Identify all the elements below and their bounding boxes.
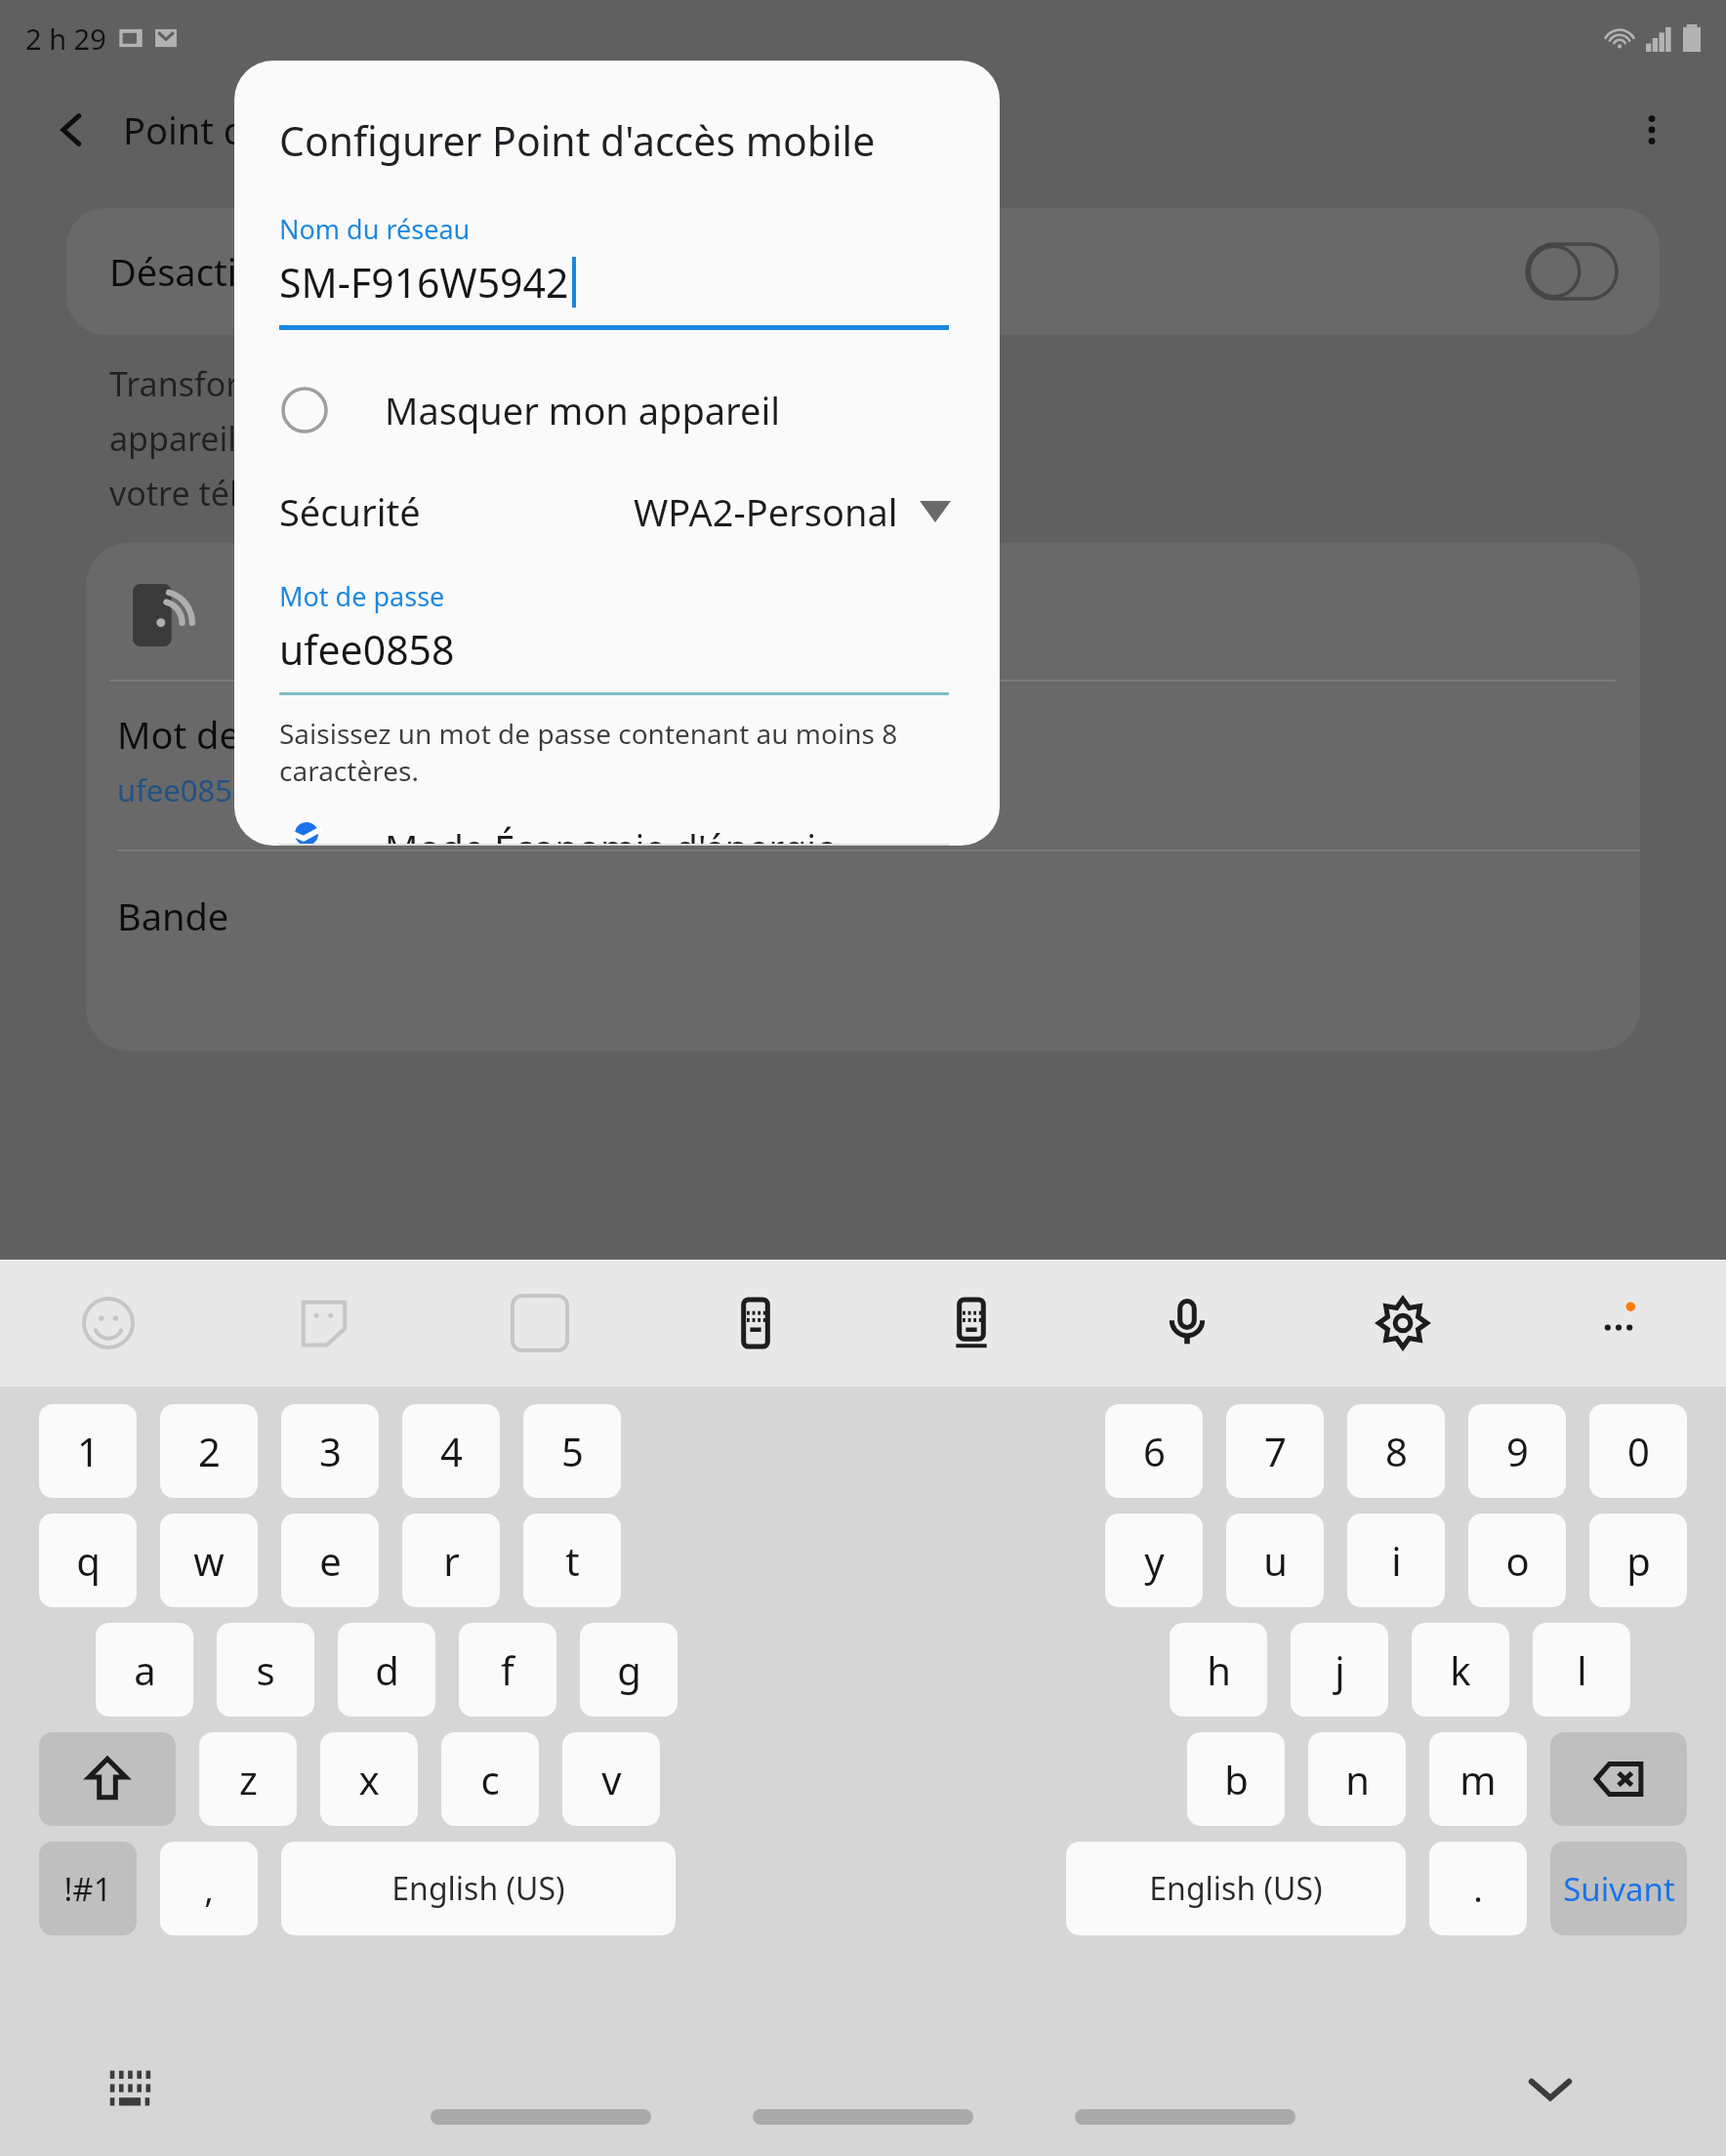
button[interactable]: 1 — [39, 1404, 137, 1498]
staticText: w — [193, 1534, 225, 1587]
staticText: r — [443, 1534, 460, 1587]
button[interactable]: h — [1170, 1623, 1267, 1717]
button[interactable]: 0 — [1589, 1404, 1687, 1498]
button[interactable]: Key — [39, 1732, 176, 1826]
button[interactable]: s — [217, 1623, 314, 1717]
button[interactable]: Back — [45, 103, 100, 157]
button[interactable]: Settings — [1294, 1260, 1510, 1387]
staticText: 0 — [1627, 1425, 1650, 1477]
staticText: !#1 — [63, 1867, 112, 1911]
button[interactable]: w — [160, 1513, 258, 1607]
staticText: m — [1459, 1753, 1497, 1805]
staticText: n — [1345, 1753, 1370, 1805]
button[interactable]: 3 — [281, 1404, 379, 1498]
button[interactable]: z — [199, 1732, 297, 1826]
staticText: y — [1144, 1534, 1165, 1587]
button[interactable]: l — [1533, 1623, 1630, 1717]
button[interactable]: e — [281, 1513, 379, 1607]
button[interactable]: g — [580, 1623, 678, 1717]
button[interactable]: r — [402, 1513, 500, 1607]
button[interactable]: English (US) — [1066, 1842, 1406, 1935]
button[interactable]: 8 — [1347, 1404, 1445, 1498]
button[interactable]: b — [1187, 1732, 1285, 1826]
button[interactable]: Sécurité — [279, 477, 951, 547]
staticText: Nom du réseau — [279, 211, 471, 247]
staticText: 2 h 29 — [25, 20, 106, 58]
button[interactable]: x — [320, 1732, 418, 1826]
staticText: Désactivé — [109, 246, 277, 297]
staticText: x — [358, 1753, 380, 1805]
button[interactable]: Keyboard layout — [107, 2066, 152, 2111]
button[interactable]: Voice input — [1079, 1260, 1294, 1387]
staticText: Configurer Point d'accès mobile — [279, 113, 876, 168]
staticText: Mot de passe — [117, 709, 350, 760]
button[interactable]: i — [1347, 1513, 1445, 1607]
staticText: , — [204, 1865, 214, 1913]
button[interactable]: Désactivé — [66, 208, 1660, 335]
button[interactable]: q — [39, 1513, 137, 1607]
button[interactable]: o — [1468, 1513, 1566, 1607]
staticText: Bande — [117, 891, 229, 941]
staticText: a — [134, 1643, 156, 1696]
button[interactable]: a — [96, 1623, 193, 1717]
button[interactable]: 9 — [1468, 1404, 1566, 1498]
staticText: l — [1577, 1643, 1587, 1696]
staticText: ufee0858 — [117, 769, 250, 810]
button[interactable]: f — [459, 1623, 556, 1717]
staticText: b — [1224, 1753, 1249, 1805]
button[interactable]: More — [1510, 1260, 1726, 1387]
staticText: SM-F916W5942 — [279, 255, 569, 310]
button[interactable]: English (US) — [281, 1842, 676, 1935]
button[interactable]: d — [338, 1623, 435, 1717]
staticText: votre téléphone. — [109, 471, 366, 516]
button[interactable]: 7 — [1226, 1404, 1324, 1498]
button[interactable]: Emoji — [0, 1260, 216, 1387]
button[interactable]: 2 — [160, 1404, 258, 1498]
button[interactable]: Mode Économie d'énergie — [234, 822, 1000, 846]
staticText: Suivant — [1563, 1867, 1675, 1911]
button[interactable]: y — [1105, 1513, 1203, 1607]
button[interactable]: GIF — [431, 1260, 647, 1387]
button[interactable]: Suivant — [1550, 1842, 1687, 1935]
staticText: WPA2-Personal — [634, 486, 898, 537]
button[interactable]: !#1 — [39, 1842, 137, 1935]
button[interactable]: t — [523, 1513, 621, 1607]
button[interactable]: Key — [1550, 1732, 1687, 1826]
button[interactable]: 6 — [1105, 1404, 1203, 1498]
button[interactable]: Hide keyboard — [1521, 2059, 1580, 2118]
staticText: 8 — [1385, 1425, 1408, 1477]
staticText: h — [1207, 1643, 1231, 1696]
staticText: Point d'accès mobile — [123, 104, 478, 155]
staticText: English (US) — [1149, 1867, 1323, 1910]
button[interactable]: 4 — [402, 1404, 500, 1498]
button[interactable]: . — [1429, 1842, 1527, 1935]
button[interactable]: k — [1412, 1623, 1509, 1717]
button[interactable]: Stickers — [216, 1260, 431, 1387]
staticText: . — [1473, 1865, 1483, 1913]
button[interactable]: v — [562, 1732, 660, 1826]
button[interactable]: 5 — [523, 1404, 621, 1498]
staticText: Saisissez un mot de passe contenant au m… — [279, 715, 1000, 789]
staticText: 2 — [198, 1425, 221, 1477]
staticText: 3 — [319, 1425, 342, 1477]
button[interactable]: j — [1291, 1623, 1388, 1717]
staticText: 7 — [1264, 1425, 1287, 1477]
button[interactable]: More options — [1624, 103, 1679, 157]
staticText: Masquer mon appareil — [385, 385, 781, 435]
staticText: g — [617, 1643, 641, 1696]
button[interactable]: n — [1308, 1732, 1406, 1826]
staticText: u — [1263, 1534, 1288, 1587]
button[interactable]: Keyboard mode — [647, 1260, 863, 1387]
button[interactable]: m — [1429, 1732, 1527, 1826]
button[interactable]: u — [1226, 1513, 1324, 1607]
button[interactable]: Floating keyboard — [863, 1260, 1079, 1387]
button[interactable]: p — [1589, 1513, 1687, 1607]
staticText: d — [375, 1643, 399, 1696]
button[interactable]: Masquer mon appareil — [234, 373, 1000, 447]
staticText: 9 — [1506, 1425, 1529, 1477]
button[interactable]: c — [441, 1732, 539, 1826]
staticText: 6 — [1143, 1425, 1166, 1477]
staticText: 4 — [440, 1425, 463, 1477]
staticText: t — [565, 1534, 580, 1587]
button[interactable]: , — [160, 1842, 258, 1935]
